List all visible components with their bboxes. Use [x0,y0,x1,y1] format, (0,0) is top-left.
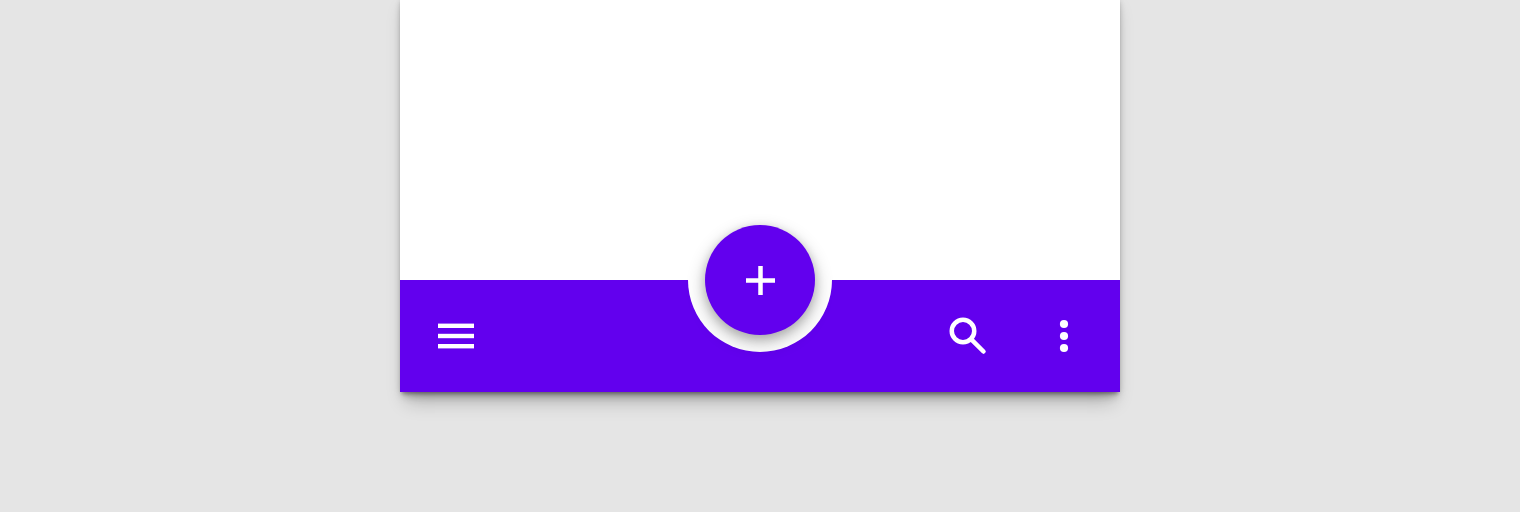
button[interactable]: Search [938,308,994,364]
button[interactable]: Add [705,225,815,335]
button[interactable]: More options [1036,308,1092,364]
button[interactable]: Navigation menu [428,308,484,364]
